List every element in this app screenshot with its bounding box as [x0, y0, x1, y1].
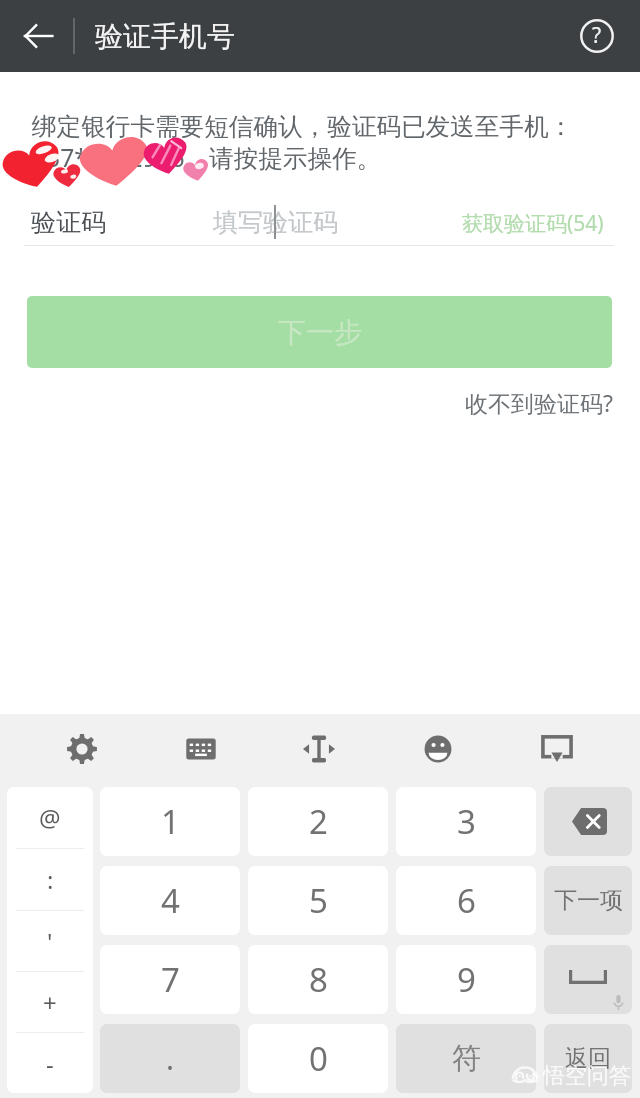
staticText: 8 — [309, 957, 328, 1002]
button[interactable]: Emoji — [406, 717, 470, 781]
staticText: 1 — [161, 799, 180, 844]
button[interactable]: : — [7, 849, 93, 910]
staticText: - — [46, 1047, 54, 1080]
staticText: 9 — [457, 957, 476, 1002]
staticText: 6 — [457, 878, 476, 923]
button[interactable]: 获取验证码(54) — [462, 209, 604, 238]
staticText: . — [166, 1038, 175, 1079]
button[interactable]: 下一步 — [27, 296, 612, 368]
button[interactable]: . — [100, 1024, 240, 1093]
button[interactable]: ' — [7, 911, 93, 971]
button[interactable]: @ — [7, 787, 93, 848]
button[interactable]: 符 — [396, 1024, 536, 1093]
button[interactable]: Backspace — [544, 787, 632, 856]
button[interactable]: 收不到验证码? — [465, 387, 613, 418]
button[interactable]: - — [7, 1033, 93, 1093]
staticText: 符 — [452, 1040, 481, 1077]
staticText: 3 — [457, 799, 476, 844]
staticText: 悟空问答 — [543, 1062, 631, 1090]
button[interactable]: 1 — [100, 787, 240, 856]
button[interactable]: 下一项 — [544, 866, 632, 935]
button[interactable]: 3 — [396, 787, 536, 856]
staticText: 5 — [309, 878, 328, 923]
staticText: 2 — [309, 799, 328, 844]
staticText: 验证码 — [31, 207, 106, 238]
staticText: 绑定银行卡需要短信确认，验证码已发送至手机： 137****2926，请按提示操… — [32, 111, 574, 175]
button[interactable]: Help — [571, 10, 623, 62]
staticText: 获取验证码(54) — [462, 209, 604, 238]
button[interactable]: 6 — [396, 866, 536, 935]
staticText: : — [47, 863, 54, 896]
button[interactable]: 返回 — [544, 1024, 632, 1093]
staticText: 收不到验证码? — [465, 387, 613, 418]
button[interactable]: 5 — [248, 866, 388, 935]
button[interactable]: 2 — [248, 787, 388, 856]
staticText: 下一项 — [554, 886, 623, 915]
button[interactable]: Move cursor — [287, 717, 351, 781]
button[interactable]: 4 — [100, 866, 240, 935]
button[interactable]: Keyboard — [169, 717, 233, 781]
button[interactable]: 8 — [248, 945, 388, 1014]
staticText: 7 — [161, 957, 180, 1002]
staticText: 验证手机号 — [95, 19, 235, 54]
staticText: ' — [47, 925, 53, 958]
staticText: 返回 — [565, 1044, 611, 1073]
staticText: 下一步 — [278, 315, 362, 350]
button[interactable]: Back — [10, 8, 66, 64]
staticText: + — [43, 986, 57, 1019]
staticText: @ — [39, 801, 61, 834]
button[interactable]: 7 — [100, 945, 240, 1014]
staticText: 填写验证码 — [213, 207, 338, 238]
staticText: ? — [592, 21, 602, 50]
button[interactable]: 9 — [396, 945, 536, 1014]
button[interactable]: Settings — [50, 717, 114, 781]
staticText: 0 — [309, 1036, 328, 1081]
button[interactable]: + — [7, 972, 93, 1032]
button[interactable]: Hide keyboard — [525, 717, 589, 781]
button[interactable]: Space — [544, 945, 632, 1014]
button[interactable]: 0 — [248, 1024, 388, 1093]
staticText: 4 — [161, 878, 180, 923]
